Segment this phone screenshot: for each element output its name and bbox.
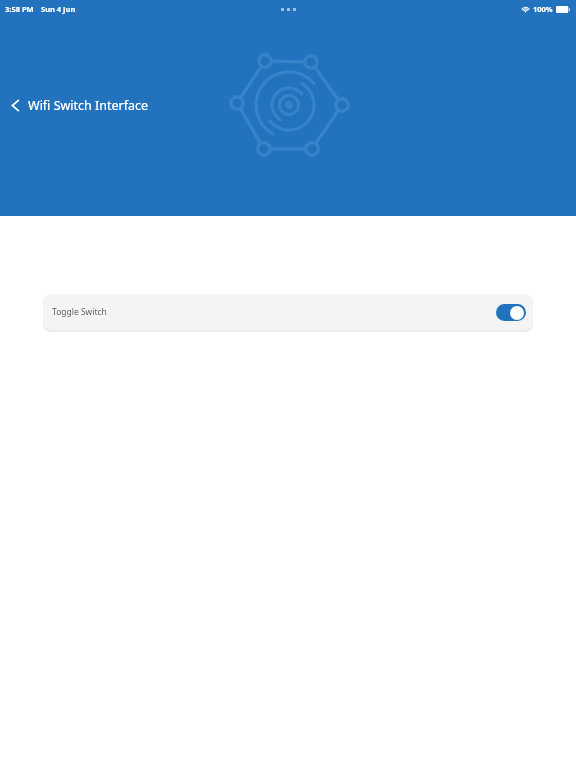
staticText: 100% <box>533 4 553 14</box>
button[interactable]: Toggle Switch <box>43 294 533 330</box>
staticText: Sun 4 Jun <box>41 4 76 14</box>
staticText: Toggle Switch <box>52 306 496 318</box>
button[interactable]: Back <box>0 92 161 118</box>
staticText: Wifi Switch Interface <box>28 97 149 114</box>
staticText: 3:58 PM <box>5 4 34 14</box>
button[interactable]: Toggle Switch, on <box>496 304 526 321</box>
